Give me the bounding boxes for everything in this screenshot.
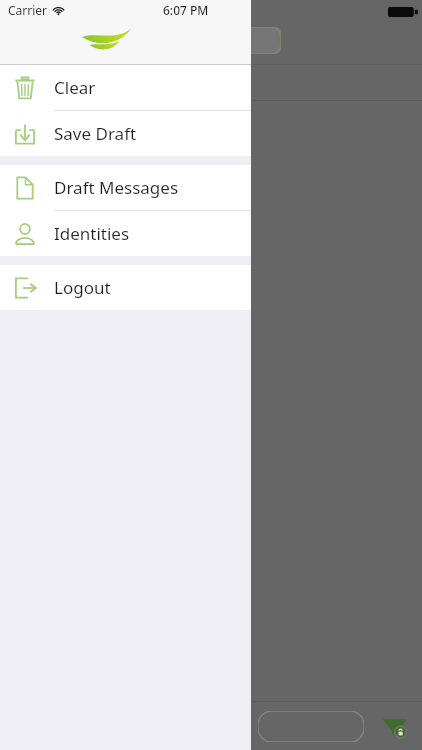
staticText: Identities — [54, 222, 130, 245]
button[interactable]: Toolbar action — [243, 27, 281, 54]
staticText: Carrier — [8, 2, 48, 18]
staticText: Clear — [54, 76, 96, 99]
staticText: 6:07 PM — [163, 2, 209, 18]
button[interactable]: Save Draft — [0, 111, 251, 156]
staticText: Save Draft — [54, 122, 137, 145]
button[interactable]: Draft Messages — [0, 165, 251, 210]
button[interactable]: Identities — [0, 211, 251, 256]
button[interactable]: Message input — [258, 711, 364, 742]
staticText: Logout — [54, 276, 111, 299]
button[interactable]: Send secure message — [378, 710, 412, 744]
button[interactable]: Logout — [0, 265, 251, 310]
staticText: Draft Messages — [54, 176, 179, 199]
button[interactable]: Clear — [0, 65, 251, 110]
